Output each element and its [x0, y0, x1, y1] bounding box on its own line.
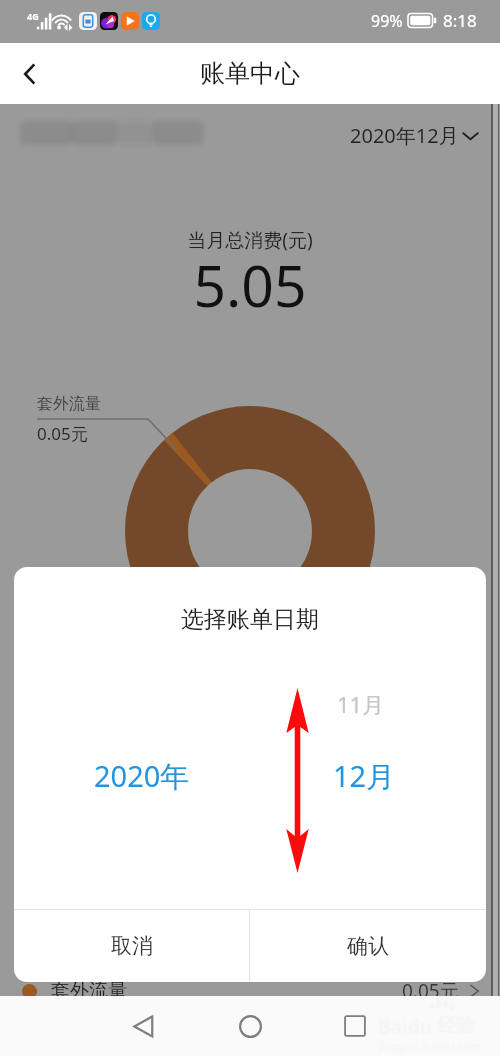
button[interactable]: Back	[123, 1006, 163, 1046]
staticText: 套外流量	[37, 394, 101, 414]
button[interactable]: 2020年12月	[350, 122, 479, 149]
staticText: 2020年12月	[350, 122, 459, 149]
staticText: 99%	[371, 10, 403, 32]
staticText: 套外流量	[51, 979, 127, 1003]
button[interactable]: 确认	[250, 910, 486, 982]
button[interactable]: 取消	[14, 910, 249, 982]
staticText: 2020年	[94, 756, 190, 796]
staticText: 取消	[111, 933, 153, 959]
staticText: 11月	[337, 689, 385, 719]
button[interactable]: Home	[230, 1006, 270, 1046]
button[interactable]: Recents	[335, 1006, 375, 1046]
staticText: 0.05元	[37, 422, 88, 445]
staticText: 账单中心	[200, 58, 300, 89]
staticText: 8:18	[443, 9, 477, 32]
staticText: 4G	[27, 10, 39, 22]
button[interactable]: 返回	[8, 52, 52, 96]
staticText: 选择账单日期	[14, 605, 486, 634]
staticText: 12月	[333, 756, 396, 796]
staticText: 0.05元	[402, 978, 459, 1004]
staticText: 确认	[347, 933, 389, 959]
staticText: 当月总消费(元)	[0, 227, 500, 253]
staticText: 5.05	[0, 246, 500, 324]
